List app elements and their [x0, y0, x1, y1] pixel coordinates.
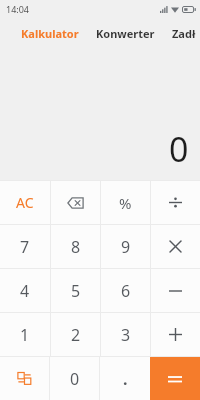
staticText: 14:04 — [6, 3, 30, 15]
button[interactable]: Zadłużenie — [172, 26, 200, 41]
button[interactable]: Minus — [151, 269, 200, 312]
staticText: 2 — [71, 324, 81, 346]
button[interactable]: 2 — [51, 313, 100, 356]
button[interactable]: 1 — [0, 313, 50, 356]
button[interactable]: Multiply — [151, 225, 200, 268]
button[interactable]: AC — [0, 181, 50, 224]
button[interactable]: Kalkulator — [21, 26, 79, 41]
button[interactable]: % — [101, 181, 150, 224]
staticText: Kalkulator — [21, 26, 79, 41]
staticText: . — [123, 368, 128, 390]
button[interactable]: Convert units — [0, 357, 49, 400]
button[interactable]: 6 — [101, 269, 150, 312]
button[interactable]: Equals — [150, 357, 200, 400]
staticText: 0 — [169, 126, 189, 172]
button[interactable]: 4 — [0, 269, 50, 312]
staticText: 3 — [121, 324, 131, 346]
button[interactable]: 3 — [101, 313, 150, 356]
staticText: Konwerter — [96, 26, 155, 41]
button[interactable]: Konwerter — [96, 26, 155, 41]
staticText: Zadłużenie — [172, 26, 200, 41]
button[interactable]: 5 — [51, 269, 100, 312]
staticText: 1 — [20, 324, 30, 346]
staticText: 6 — [121, 280, 131, 302]
button[interactable]: 0 — [50, 357, 99, 400]
staticText: 5 — [71, 280, 81, 302]
button[interactable]: Divide — [151, 181, 200, 224]
staticText: 9 — [121, 236, 131, 258]
button[interactable]: 9 — [101, 225, 150, 268]
staticText: 8 — [71, 236, 81, 258]
staticText: AC — [16, 193, 34, 212]
staticText: 7 — [20, 236, 30, 258]
staticText: 0 — [70, 368, 80, 390]
button[interactable]: 8 — [51, 225, 100, 268]
button[interactable]: 7 — [0, 225, 50, 268]
staticText: % — [119, 193, 132, 213]
button[interactable]: . — [100, 357, 150, 400]
button[interactable]: Plus — [151, 313, 200, 356]
staticText: 4 — [20, 280, 30, 302]
button[interactable]: Backspace — [51, 181, 100, 224]
